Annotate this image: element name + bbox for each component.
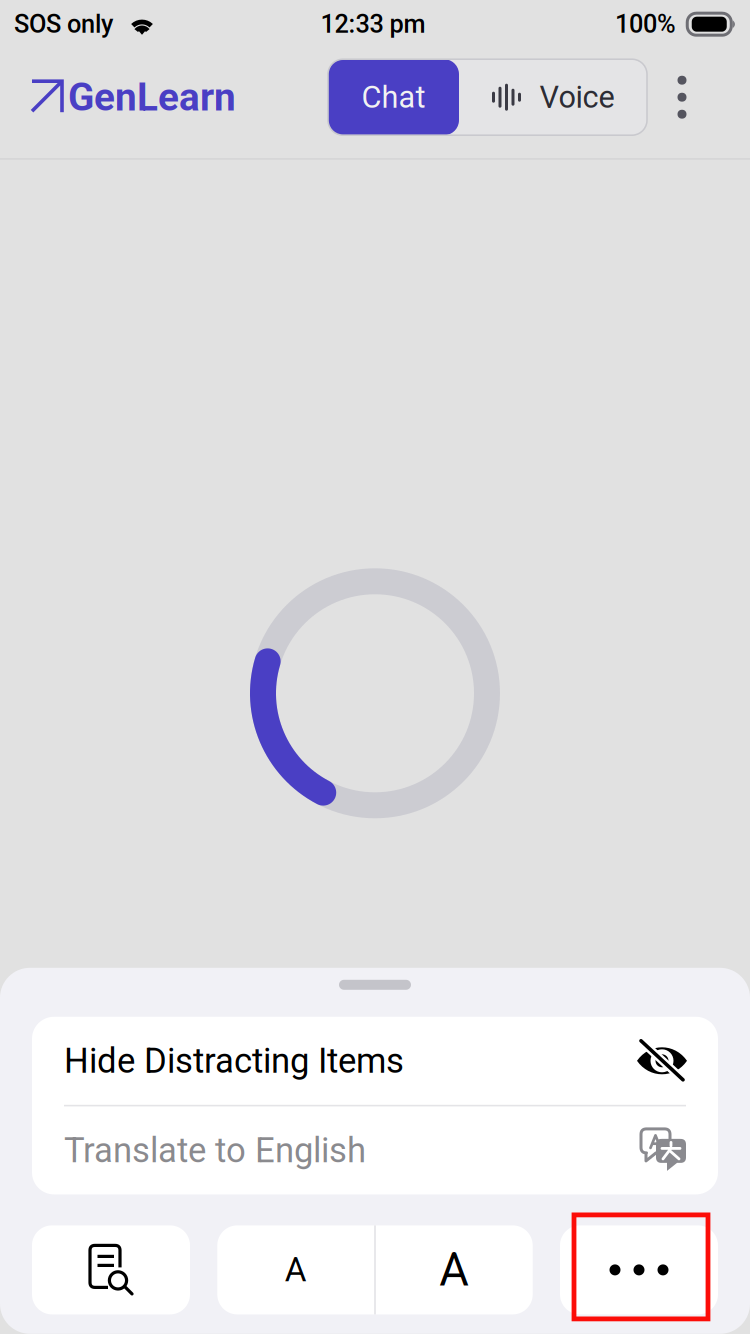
staticText: 100% (615, 9, 676, 39)
staticText: 12:33 pm (320, 9, 425, 39)
staticText: GenLearn (68, 74, 236, 120)
button[interactable]: Increase text size (376, 1225, 533, 1314)
staticText: Hide Distracting Items (64, 1040, 404, 1081)
button[interactable]: Chat (328, 59, 459, 135)
button[interactable]: Translate to English (32, 1106, 718, 1194)
button[interactable]: Decrease text size (217, 1225, 374, 1314)
button[interactable]: More (560, 1225, 718, 1314)
staticText: SOS only (14, 9, 113, 39)
staticText: A (285, 1250, 307, 1289)
button[interactable]: Find in page (32, 1225, 190, 1314)
button[interactable]: More options (647, 54, 717, 140)
staticText: Chat (361, 79, 425, 115)
staticText: Translate to English (64, 1130, 366, 1171)
staticText: A (439, 1243, 469, 1296)
button[interactable]: Voice (459, 59, 647, 135)
button[interactable]: Hide Distracting Items (32, 1017, 718, 1105)
staticText: Voice (539, 79, 614, 115)
